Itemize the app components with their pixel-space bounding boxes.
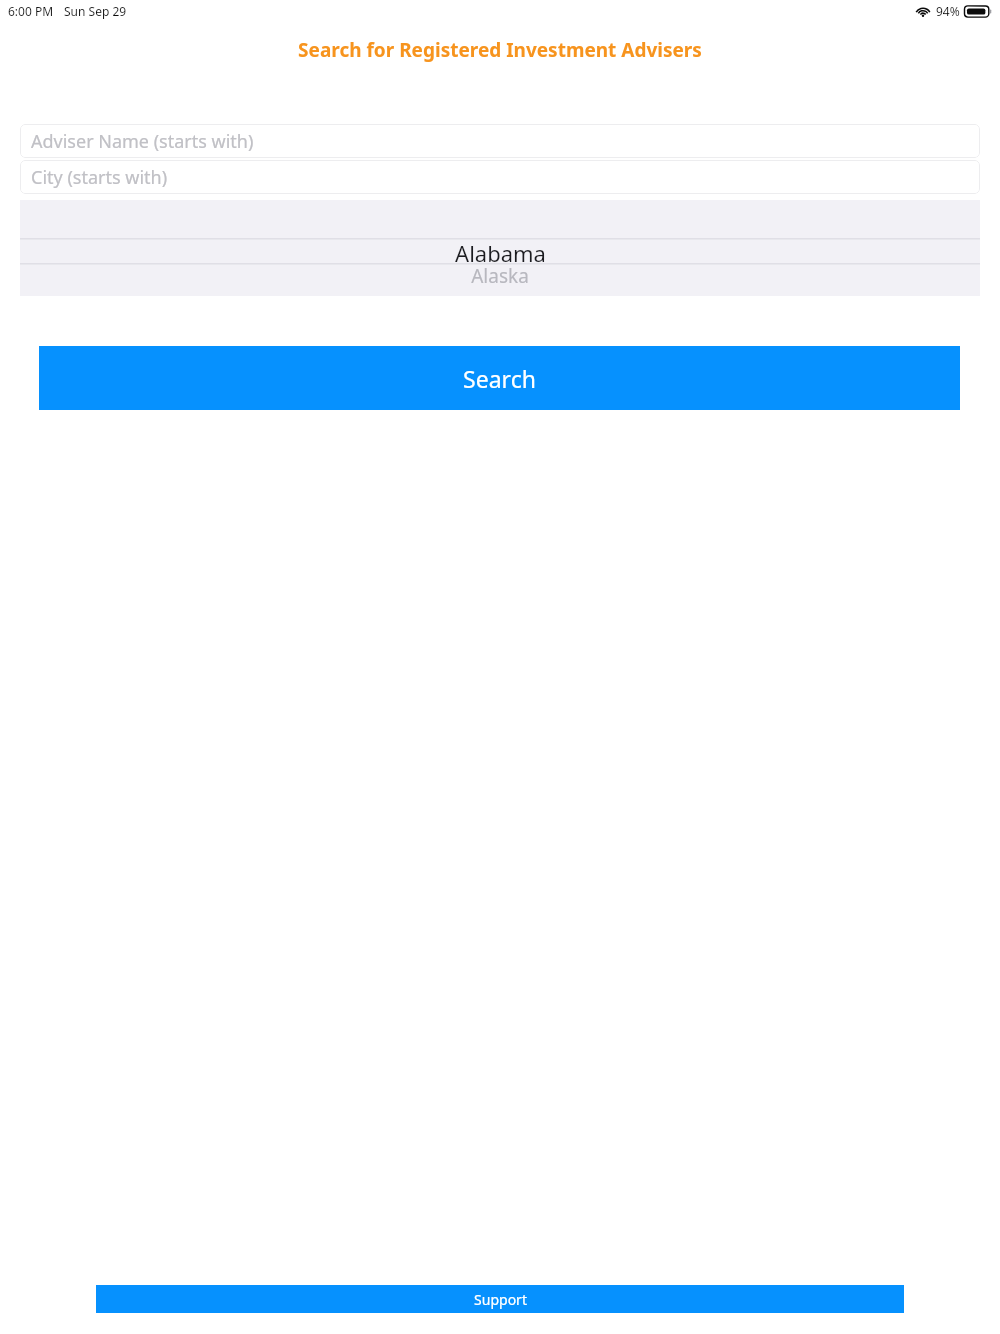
staticText: City (starts with) <box>31 165 168 190</box>
staticText: Search <box>463 363 536 394</box>
button[interactable]: Support <box>96 1285 904 1313</box>
staticText: Sun Sep 29 <box>64 3 127 19</box>
staticText: 94% <box>936 3 960 19</box>
button[interactable]: Search <box>39 346 960 410</box>
staticText: Search for Registered Investment Adviser… <box>0 37 1000 63</box>
staticText: 6:00 PM <box>8 3 54 19</box>
staticText: Alabama <box>455 238 546 263</box>
staticText: Adviser Name (starts with) <box>31 129 254 154</box>
button[interactable]: Alabama <box>20 200 980 296</box>
button[interactable]: City (starts with) <box>20 160 980 194</box>
staticText: Support <box>474 1290 527 1309</box>
other: Battery 94 percent <box>964 5 991 18</box>
other: Wi-Fi <box>915 5 931 17</box>
staticText: Alaska <box>471 263 529 286</box>
button[interactable]: Adviser Name (starts with) <box>20 124 980 158</box>
